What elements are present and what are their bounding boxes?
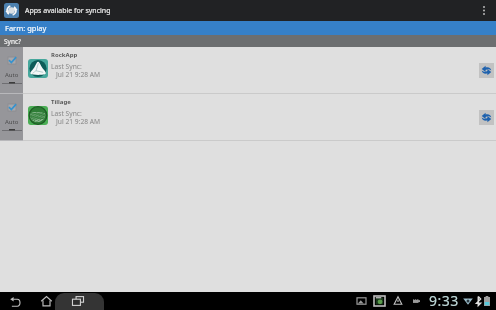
staticText: Auto [5,71,19,79]
button[interactable]: Enable sync [8,104,16,111]
button[interactable]: Sync now [479,63,494,78]
button[interactable]: Tillage [23,94,496,140]
staticText: Farm: gplay [5,23,47,33]
staticText: Jul 21 9:28 AM [56,70,101,79]
button[interactable]: Back [10,297,21,307]
staticText: Apps available for syncing [25,6,111,16]
staticText: RockApp [51,51,78,59]
button[interactable]: RockApp [23,47,496,93]
button[interactable]: Enable sync [8,57,16,64]
staticText: Jul 21 9:28 AM [56,117,101,126]
button[interactable]: Auto [2,71,22,84]
staticText: 9:33 [429,291,459,309]
staticText: Sync? [4,37,21,46]
button[interactable]: Recent apps [72,296,84,306]
staticText: Last Sync: [51,109,82,118]
staticText: Last Sync: [51,62,82,71]
button[interactable]: Auto [2,118,22,131]
button[interactable]: Sync now [479,110,494,125]
staticText: Tillage [51,98,71,106]
staticText: Auto [5,118,19,126]
button[interactable]: Home [41,296,52,307]
button[interactable]: More options [475,0,493,21]
button[interactable]: App icon [4,3,19,18]
